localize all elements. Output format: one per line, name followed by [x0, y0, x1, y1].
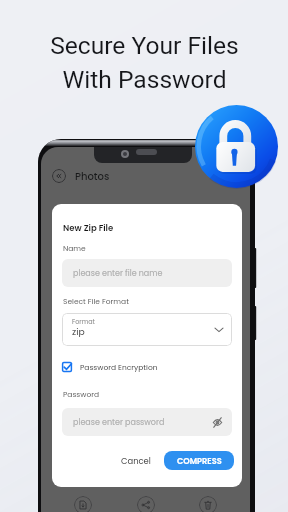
staticText: zip — [72, 325, 85, 338]
button[interactable]: Format — [62, 313, 232, 346]
button[interactable]: Delete — [199, 496, 217, 512]
button[interactable]: Share — [137, 496, 155, 512]
button[interactable]: COMPRESS — [164, 451, 234, 470]
staticText: Secure Your Files — [50, 31, 239, 60]
staticText: COMPRESS — [177, 455, 222, 466]
staticText: Name — [63, 243, 86, 253]
button[interactable]: Save file — [74, 496, 92, 512]
button[interactable]: Password Encryption — [62, 362, 158, 372]
staticText: Photos — [75, 169, 110, 183]
button[interactable]: please enter file name — [62, 259, 232, 287]
button[interactable]: Cancel — [115, 451, 157, 470]
staticText: With Password — [62, 65, 227, 94]
staticText: please enter file name — [73, 268, 163, 279]
staticText: Password Encryption — [80, 362, 158, 372]
staticText: Password — [63, 389, 100, 399]
button[interactable]: please enter password — [62, 408, 232, 436]
staticText: New Zip File — [63, 222, 114, 234]
staticText: please enter password — [73, 417, 165, 428]
staticText: Select File Format — [63, 296, 129, 306]
staticText: Cancel — [121, 455, 151, 466]
button[interactable]: Back — [52, 169, 66, 183]
staticText: Format — [72, 317, 95, 326]
